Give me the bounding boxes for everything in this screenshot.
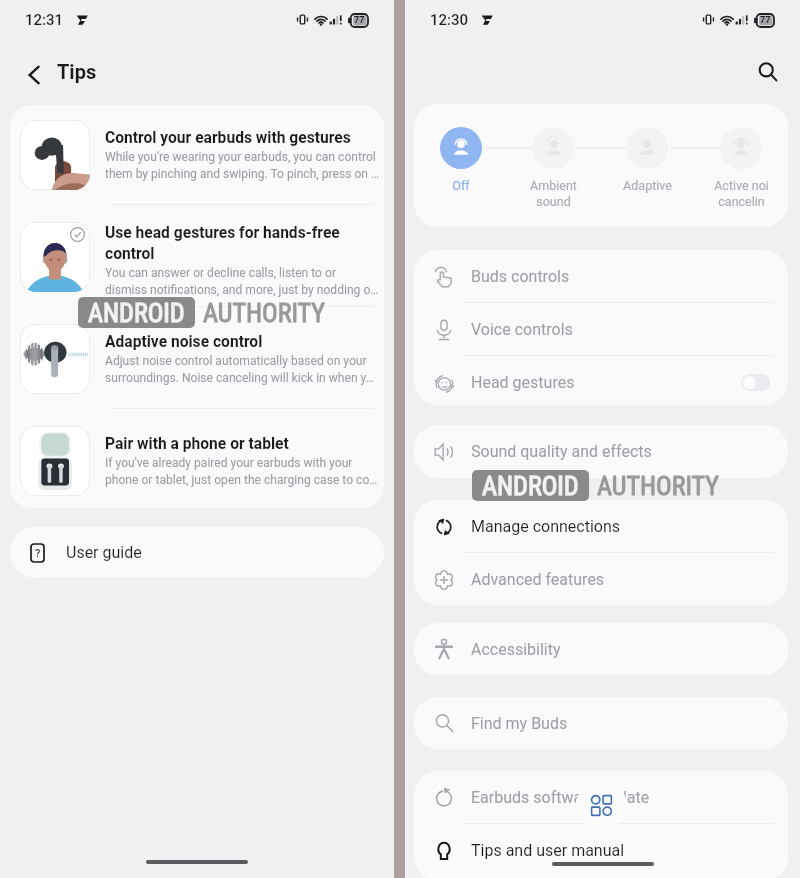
staticText: Active noi cancelin [714, 178, 769, 209]
staticText: Adaptive noise control [105, 333, 263, 351]
button[interactable]: Pair with a phone or tablet [10, 426, 384, 508]
staticText: Buds controls [471, 267, 570, 286]
staticText: ANDROID [482, 471, 579, 501]
staticText: Off [452, 178, 470, 193]
staticText: 77 [760, 15, 771, 26]
button[interactable]: Accessibility [414, 623, 788, 675]
staticText: ANDROID [88, 298, 185, 328]
staticText: Tips [57, 60, 97, 83]
button[interactable]: Manage connections [414, 500, 788, 553]
staticText: If you've already paired your earbuds wi… [105, 456, 378, 487]
button[interactable]: Search [746, 50, 790, 94]
staticText: Find my Buds [471, 714, 568, 733]
staticText: Advanced features [471, 570, 605, 589]
staticText: Voice controls [471, 320, 573, 339]
button[interactable]: Find my Buds [414, 697, 788, 749]
button[interactable]: Voice controls [414, 303, 788, 356]
button[interactable]: Use head gestures for hands-free control [10, 222, 384, 306]
button[interactable]: Active noi cancelin [694, 104, 788, 227]
button[interactable]: Sound quality and effects [414, 425, 788, 478]
button[interactable]: Adaptive noise control [10, 324, 384, 408]
staticText: User guide [66, 543, 142, 562]
staticText: Accessibility [471, 640, 561, 659]
staticText: 77 [354, 15, 365, 26]
staticText: ? [35, 547, 41, 560]
button[interactable]: Adaptive [600, 104, 694, 227]
button[interactable]: Buds controls [414, 250, 788, 303]
staticText: Manage connections [471, 517, 621, 536]
staticText: 12:31 [25, 11, 64, 29]
button[interactable]: ? [10, 527, 384, 578]
staticText: Control your earbuds with gestures [105, 129, 351, 147]
staticText: Earbuds software update [471, 788, 650, 807]
staticText: Head gestures [471, 373, 575, 392]
staticText: While you're wearing your earbuds, you c… [105, 150, 380, 181]
button[interactable]: Earbuds software update [414, 771, 788, 824]
staticText: Use head gestures for hands-free control [105, 224, 340, 263]
staticText: You can answer or decline calls, listen … [105, 266, 379, 297]
button[interactable]: Head gestures [414, 356, 788, 405]
staticText: Tips and user manual [471, 841, 625, 860]
button[interactable]: Ambient sound [507, 104, 600, 227]
staticText: Adaptive [623, 178, 672, 193]
button[interactable]: Advanced features [414, 553, 788, 605]
button[interactable]: Back [12, 53, 56, 97]
staticText: Sound quality and effects [471, 442, 652, 461]
staticText: Pair with a phone or tablet [105, 435, 289, 453]
staticText: AUTHORITY [203, 298, 325, 328]
staticText: 12:30 [430, 11, 469, 29]
button[interactable]: Off [414, 104, 507, 227]
button[interactable]: Control your earbuds with gestures [10, 120, 384, 204]
staticText: Adjust noise control automatically based… [105, 354, 374, 385]
staticText: Ambient sound [530, 178, 577, 209]
button[interactable]: Apps [576, 780, 627, 831]
button[interactable]: Tips and user manual [414, 824, 788, 877]
staticText: AUTHORITY [597, 471, 719, 501]
